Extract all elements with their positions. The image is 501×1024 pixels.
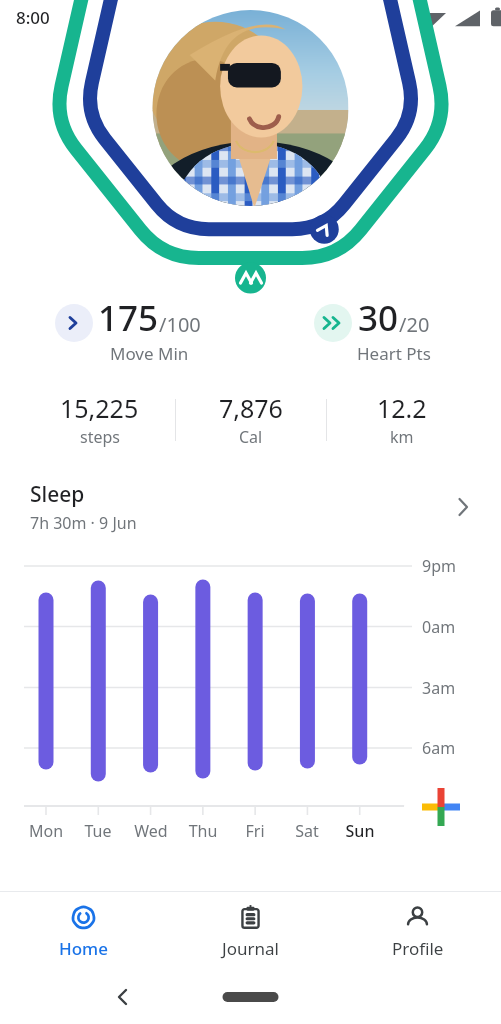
staticText: /20 [399,311,430,338]
staticText: Home [59,937,108,960]
staticText: Sleep [30,480,85,509]
staticText: Mon [20,820,72,842]
button[interactable]: Add activity [404,770,478,844]
other: Open Sleep details [451,495,475,519]
staticText: Profile [392,937,444,960]
button[interactable]: 7,876 [176,391,326,448]
staticText: 175 [98,294,159,342]
staticText: 12.2 [377,391,427,425]
button[interactable]: 12.2 [327,391,477,448]
staticText: Cal [239,426,263,448]
staticText: Sat [281,820,333,842]
button[interactable]: 30 [250,294,495,365]
staticText: 7h 30m · 9 Jun [30,512,137,534]
staticText: 30 [358,294,399,342]
button[interactable]: Journal [167,892,334,970]
staticText: Move Min [110,342,189,365]
button[interactable]: Home [0,892,167,970]
staticText: Tue [72,820,124,842]
staticText: 3am [422,677,456,699]
staticText: Sun [334,820,386,842]
staticText: km [390,426,414,448]
staticText: Thu [177,820,229,842]
staticText: Heart Pts [357,342,431,365]
staticText: 8:00 [16,6,50,29]
staticText: 6am [422,737,456,759]
button[interactable]: Sleep [0,478,501,536]
staticText: Fri [229,820,281,842]
button[interactable]: 15,225 [24,391,175,448]
staticText: 15,225 [60,391,139,425]
staticText: 0am [422,616,456,638]
staticText: Wed [125,820,177,842]
staticText: steps [80,426,120,448]
staticText: 7,876 [219,391,283,425]
staticText: Journal [222,937,279,960]
button[interactable]: Profile [334,892,501,970]
staticText: /100 [159,311,201,338]
button[interactable]: 175 [6,294,250,365]
staticText: 9pm [422,555,456,577]
